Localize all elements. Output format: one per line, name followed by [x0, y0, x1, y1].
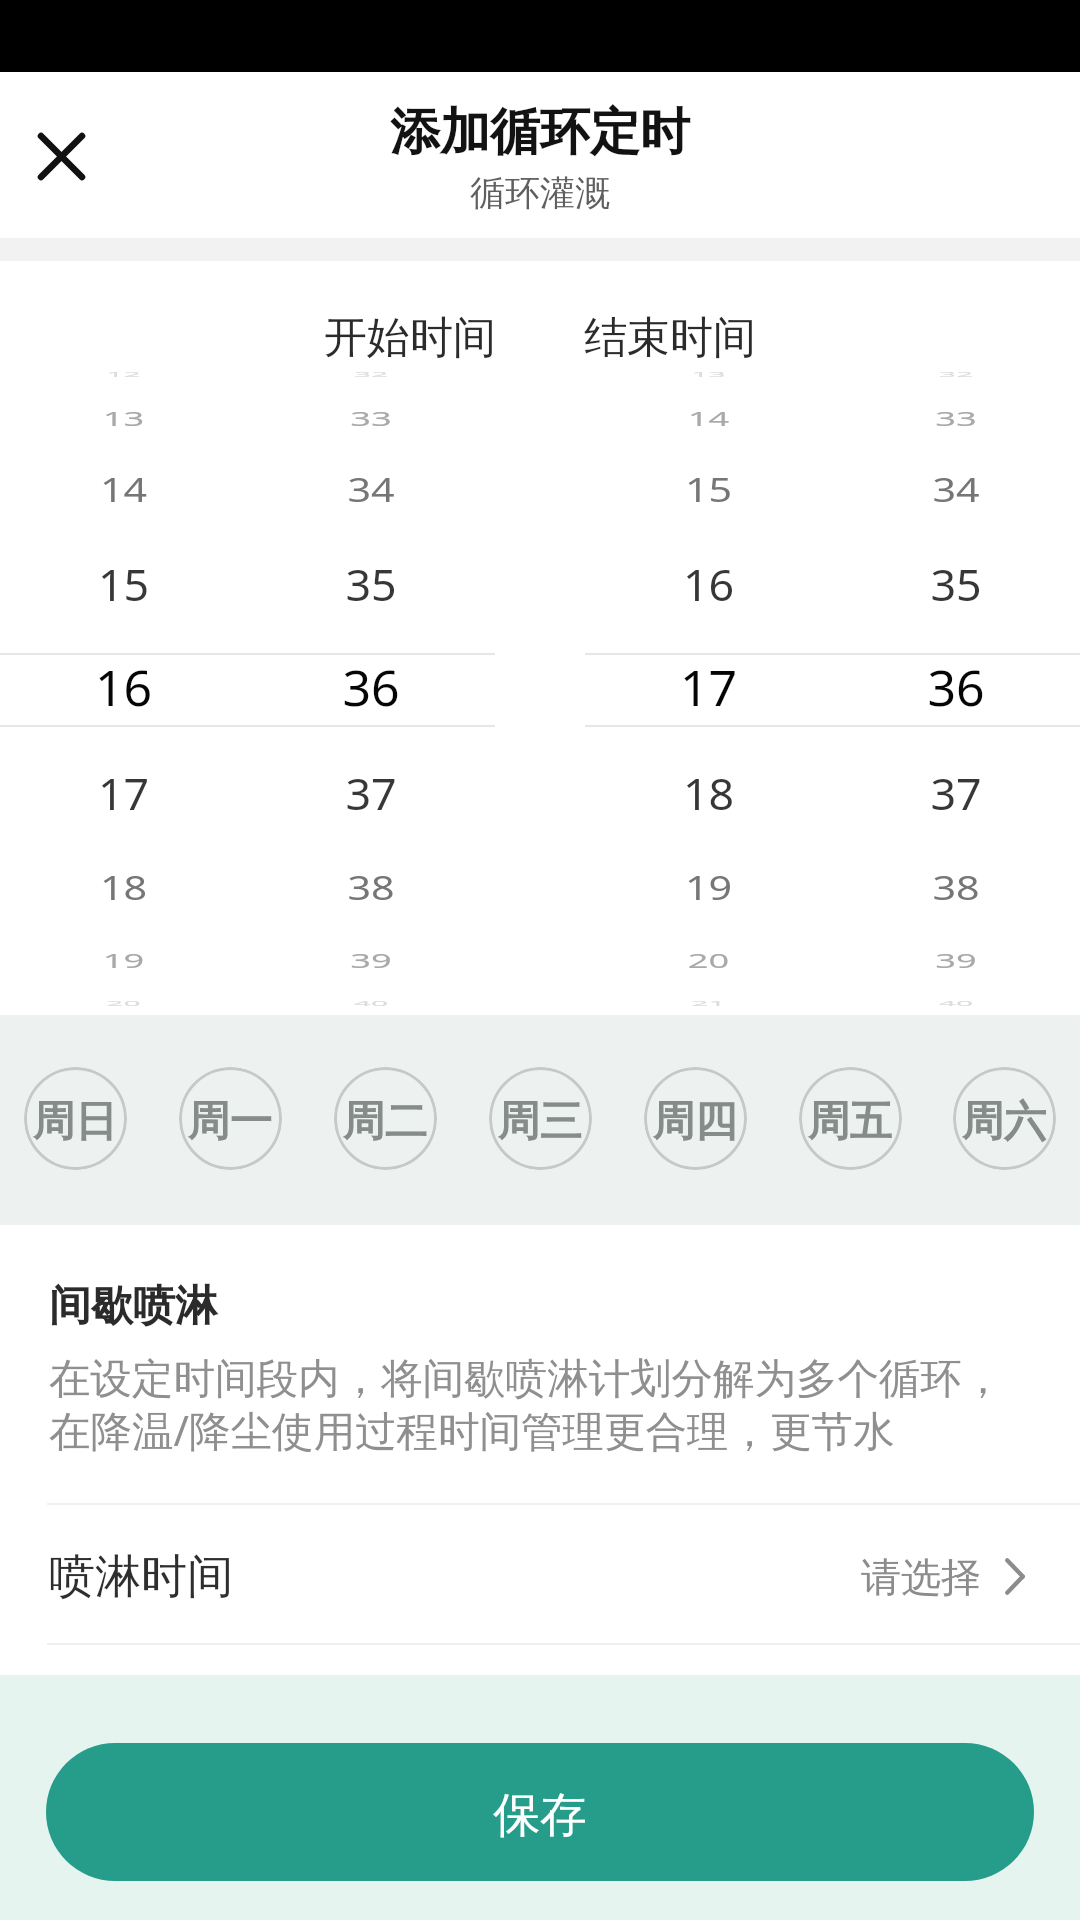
staticText: 周一: [188, 1094, 273, 1148]
staticText: 39: [832, 946, 1080, 973]
button[interactable]: 周五: [799, 1067, 902, 1170]
staticText: 19: [585, 866, 832, 910]
staticText: 周二: [343, 1094, 428, 1148]
staticText: 20: [0, 998, 247, 1009]
staticText: 32: [832, 369, 1080, 380]
staticText: 13: [0, 404, 247, 431]
staticText: 周五: [808, 1094, 893, 1148]
staticText: 38: [832, 866, 1080, 910]
staticText: 32: [247, 369, 495, 380]
staticText: 周五: [808, 1094, 893, 1148]
staticText: 开始时间: [324, 311, 496, 365]
button[interactable]: 保存: [46, 1743, 1034, 1881]
button[interactable]: 周二: [334, 1067, 437, 1170]
staticText: 16: [585, 555, 832, 614]
button[interactable]: 周六: [953, 1067, 1056, 1170]
staticText: 14: [585, 404, 832, 431]
staticText: 周一: [188, 1094, 273, 1148]
staticText: 16: [0, 653, 247, 721]
staticText: 15: [0, 555, 247, 614]
staticText: 19: [0, 946, 247, 973]
staticText: 37: [832, 764, 1080, 823]
staticText: 36: [832, 653, 1080, 721]
staticText: 周四: [653, 1094, 738, 1148]
staticText: 38: [247, 866, 495, 910]
staticText: 周三: [498, 1094, 583, 1148]
staticText: 39: [247, 946, 495, 973]
staticText: 18: [585, 764, 832, 823]
staticText: 40: [832, 998, 1080, 1009]
staticText: 周日: [33, 1094, 118, 1148]
staticText: 请选择: [861, 1552, 981, 1602]
staticText: 40: [247, 998, 495, 1009]
staticText: 35: [832, 555, 1080, 614]
staticText: 37: [247, 764, 495, 823]
staticText: 15: [585, 468, 832, 512]
staticText: 结束时间: [584, 311, 756, 365]
staticText: 保存: [493, 1786, 587, 1845]
staticText: 17: [0, 764, 247, 823]
staticText: 喷淋时间: [49, 1548, 233, 1606]
staticText: 在设定时间段内，将间歇喷淋计划分解为多个循环， 在降温/降尘使用过程时间管理更合…: [49, 1353, 1004, 1458]
staticText: 添加循环定时: [0, 101, 1080, 164]
staticText: 18: [0, 866, 247, 910]
staticText: 周四: [653, 1094, 738, 1148]
staticText: 17: [585, 653, 832, 721]
staticText: 周二: [343, 1094, 428, 1148]
staticText: 13: [585, 369, 832, 380]
button[interactable]: 周三: [489, 1067, 592, 1170]
staticText: 35: [247, 555, 495, 614]
button[interactable]: 周日: [24, 1067, 127, 1170]
staticText: 周六: [962, 1094, 1047, 1148]
staticText: 周日: [33, 1094, 118, 1148]
button[interactable]: Close: [21, 116, 102, 197]
staticText: 33: [832, 404, 1080, 431]
staticText: 36: [247, 653, 495, 721]
staticText: 33: [247, 404, 495, 431]
staticText: 循环灌溉: [0, 171, 1080, 215]
staticText: 周三: [498, 1094, 583, 1148]
button[interactable]: 周四: [644, 1067, 747, 1170]
staticText: 21: [585, 998, 832, 1009]
staticText: 12: [0, 369, 247, 380]
staticText: 34: [832, 468, 1080, 512]
staticText: 34: [247, 468, 495, 512]
staticText: 20: [585, 946, 832, 973]
button[interactable]: 周一: [179, 1067, 282, 1170]
staticText: 间歇喷淋: [49, 1280, 217, 1333]
staticText: 14: [0, 468, 247, 512]
button[interactable]: 喷淋时间: [0, 1508, 1080, 1645]
staticText: 周六: [962, 1094, 1047, 1148]
